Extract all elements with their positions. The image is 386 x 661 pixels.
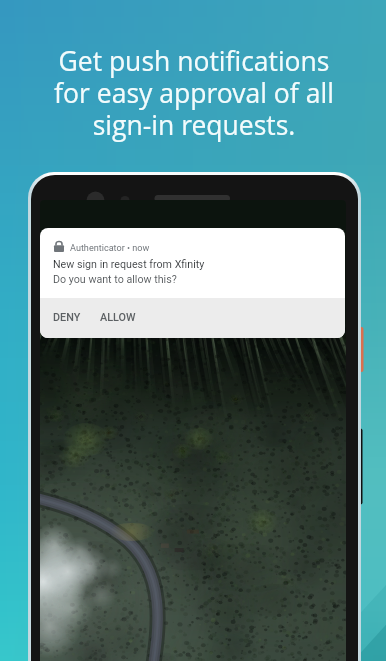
staticText: Get push notifications for easy approval… [54,43,334,143]
button[interactable]: ALLOW [94,304,142,331]
staticText: New sign in request from Xfinity [53,258,205,271]
button[interactable]: DENY [47,304,87,331]
staticText: DENY [53,311,81,324]
staticText: Authenticator • now [70,243,150,254]
staticText: ALLOW [100,311,136,324]
staticText: Do you want to allow this? [53,273,177,286]
